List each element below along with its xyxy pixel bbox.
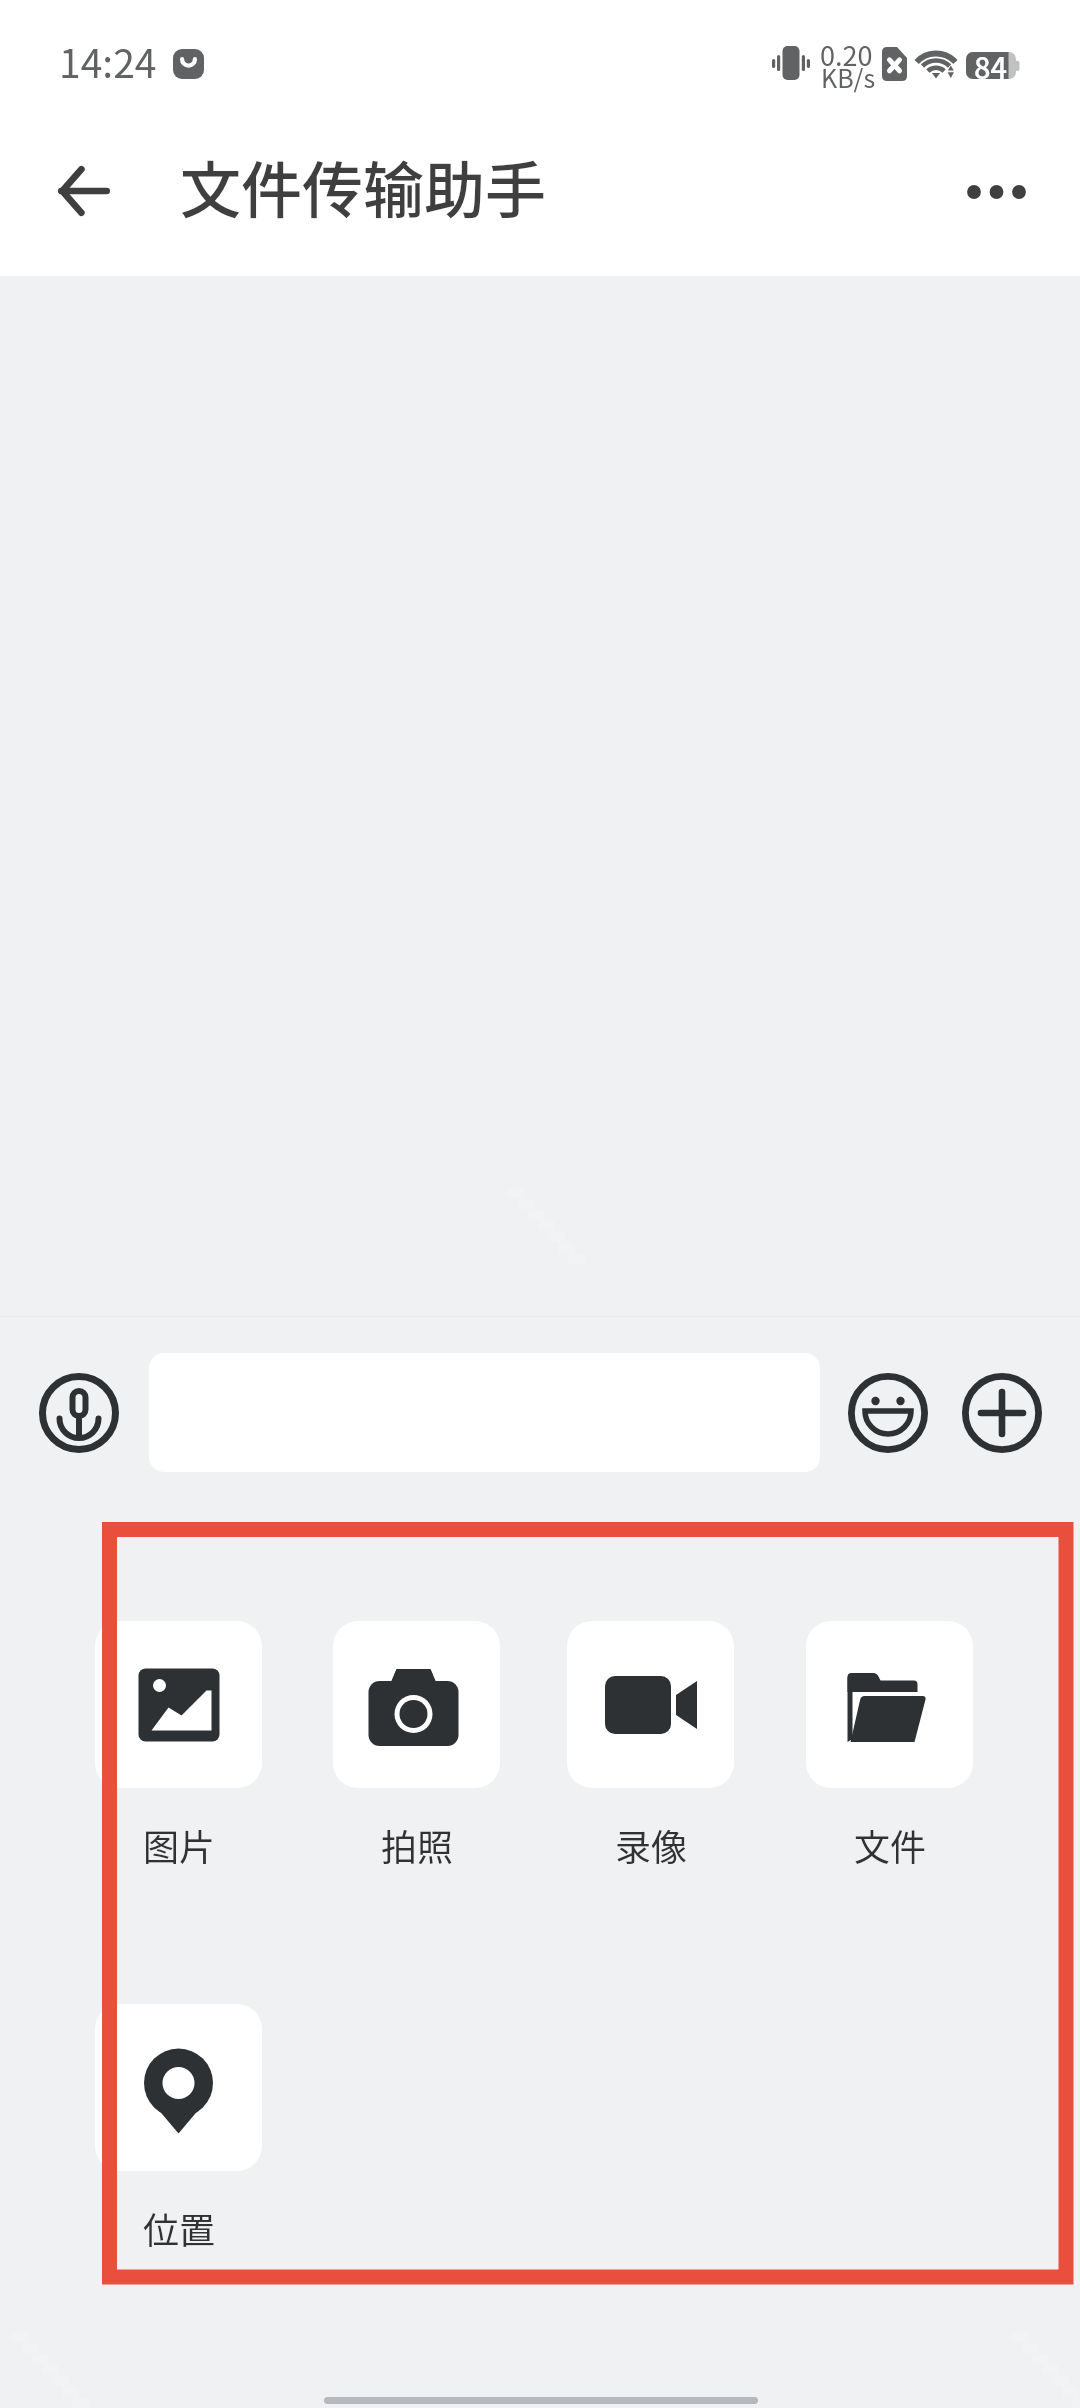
staticText: 文件 <box>854 1819 927 1871</box>
button[interactable]: 录像 <box>567 1621 734 1863</box>
button[interactable]: Add attachment <box>962 1373 1042 1453</box>
button[interactable]: More options <box>940 140 1044 244</box>
staticText: 0.20 <box>820 35 873 74</box>
staticText: 84 <box>974 45 1008 87</box>
button[interactable]: 文件 <box>806 1621 973 1863</box>
staticText: KB/s <box>821 59 876 95</box>
staticText: 14:24 <box>59 33 157 89</box>
staticText: 位置 <box>143 2202 216 2254</box>
button[interactable]: 位置 <box>95 2004 262 2246</box>
staticText: 文件传输助手 <box>180 142 547 230</box>
staticText: 录像 <box>615 1819 688 1871</box>
button[interactable]: 拍照 <box>333 1621 500 1863</box>
staticText: 图片 <box>143 1819 216 1871</box>
staticText: 拍照 <box>381 1819 454 1871</box>
button[interactable]: Voice message <box>39 1373 119 1453</box>
button[interactable]: 图片 <box>95 1621 262 1863</box>
button[interactable]: Emoji <box>848 1373 928 1453</box>
button[interactable]: Back <box>32 139 136 243</box>
